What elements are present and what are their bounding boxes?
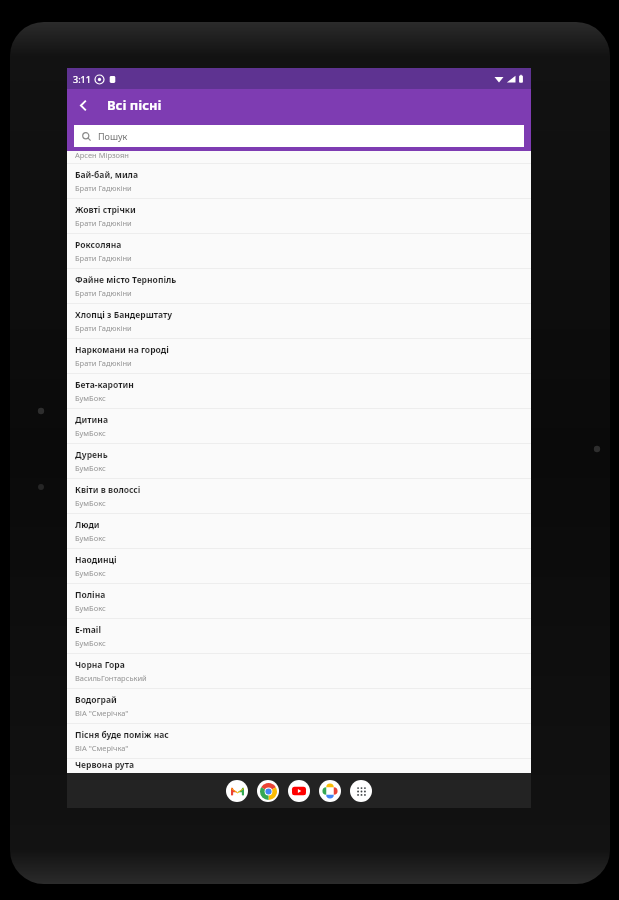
button[interactable]: Чорна Гора xyxy=(67,654,531,688)
button[interactable]: Квіти в волоссі xyxy=(67,479,531,513)
staticText: Бета-каротин xyxy=(75,379,134,391)
staticText: Квіти в волоссі xyxy=(75,484,141,496)
staticText: Водограй xyxy=(75,694,117,706)
staticText: 3:11 xyxy=(73,73,91,85)
staticText: Чорна Гора xyxy=(75,659,125,671)
staticText: Хлопці з Бандерштату xyxy=(75,309,173,321)
button[interactable]: Gmail xyxy=(226,780,248,802)
button[interactable]: Арсен Мірзоян xyxy=(67,151,531,163)
button[interactable]: Наодинці xyxy=(67,549,531,583)
staticText: Дитина xyxy=(75,414,108,426)
staticText: БумБокс xyxy=(75,498,106,508)
staticText: Брати Гадюкіни xyxy=(75,358,132,368)
staticText: Брати Гадюкіни xyxy=(75,183,132,193)
staticText: Червона рута xyxy=(75,759,135,771)
button[interactable]: Роксоляна xyxy=(67,234,531,268)
button[interactable]: Хлопці з Бандерштату xyxy=(67,304,531,338)
staticText: Бай-бай, мила xyxy=(75,169,138,181)
button[interactable]: Поліна xyxy=(67,584,531,618)
button[interactable]: Дитина xyxy=(67,409,531,443)
staticText: ВІА "Смерічка" xyxy=(75,708,129,718)
staticText: ВІА "Смерічка" xyxy=(75,743,129,753)
button[interactable]: YouTube xyxy=(288,780,310,802)
button[interactable]: Файне місто Тернопіль xyxy=(67,269,531,303)
staticText: БумБокс xyxy=(75,603,106,613)
button[interactable]: All apps xyxy=(350,780,372,802)
staticText: БумБокс xyxy=(75,393,106,403)
staticText: Брати Гадюкіни xyxy=(75,253,132,263)
button[interactable]: Chrome xyxy=(257,780,279,802)
staticText: Роксоляна xyxy=(75,239,122,251)
staticText: Пісня буде поміж нас xyxy=(75,729,169,741)
staticText: Файне місто Тернопіль xyxy=(75,274,177,286)
button[interactable]: Жовті стрічки xyxy=(67,199,531,233)
button[interactable]: E-mail xyxy=(67,619,531,653)
staticText: Поліна xyxy=(75,589,106,601)
staticText: Брати Гадюкіни xyxy=(75,323,132,333)
button[interactable]: Дурень xyxy=(67,444,531,478)
staticText: Брати Гадюкіни xyxy=(75,288,132,298)
staticText: БумБокс xyxy=(75,568,106,578)
button[interactable]: Водограй xyxy=(67,689,531,723)
staticText: Всі пісні xyxy=(107,96,162,114)
staticText: Наркомани на городі xyxy=(75,344,169,356)
staticText: ВасильГонтарський xyxy=(75,673,147,683)
button[interactable]: Photos xyxy=(319,780,341,802)
button[interactable]: Червона рута xyxy=(67,759,531,773)
staticText: Люди xyxy=(75,519,100,531)
staticText: Арсен Мірзоян xyxy=(75,150,129,160)
button[interactable]: Бета-каротин xyxy=(67,374,531,408)
staticText: БумБокс xyxy=(75,533,106,543)
staticText: Наодинці xyxy=(75,554,117,566)
button[interactable]: Люди xyxy=(67,514,531,548)
staticText: E-mail xyxy=(75,624,101,636)
button[interactable]: Пісня буде поміж нас xyxy=(67,724,531,758)
button[interactable]: Наркомани на городі xyxy=(67,339,531,373)
staticText: Брати Гадюкіни xyxy=(75,218,132,228)
staticText: БумБокс xyxy=(75,638,106,648)
staticText: БумБокс xyxy=(75,463,106,473)
button[interactable]: Пошук xyxy=(74,125,524,147)
staticText: Жовті стрічки xyxy=(75,204,136,216)
button[interactable]: Back xyxy=(67,89,99,121)
button[interactable]: Бай-бай, мила xyxy=(67,164,531,198)
staticText: Дурень xyxy=(75,449,108,461)
staticText: БумБокс xyxy=(75,428,106,438)
staticText: Пошук xyxy=(98,130,128,142)
